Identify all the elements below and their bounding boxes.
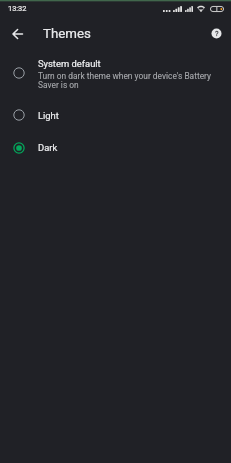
staticText: Dark — [38, 142, 58, 153]
button[interactable]: Dark — [0, 131, 231, 164]
button[interactable]: Navigate up — [5, 22, 29, 46]
button[interactable]: Light — [0, 98, 231, 131]
staticText: ? — [215, 29, 219, 38]
button[interactable]: Help — [204, 21, 228, 45]
staticText: Turn on dark theme when your device's Ba… — [38, 71, 216, 90]
button[interactable]: System default — [0, 52, 231, 94]
staticText: 13:32 — [8, 4, 27, 13]
staticText: Light — [38, 110, 59, 121]
staticText: Themes — [43, 26, 91, 42]
staticText: System default — [38, 58, 101, 69]
